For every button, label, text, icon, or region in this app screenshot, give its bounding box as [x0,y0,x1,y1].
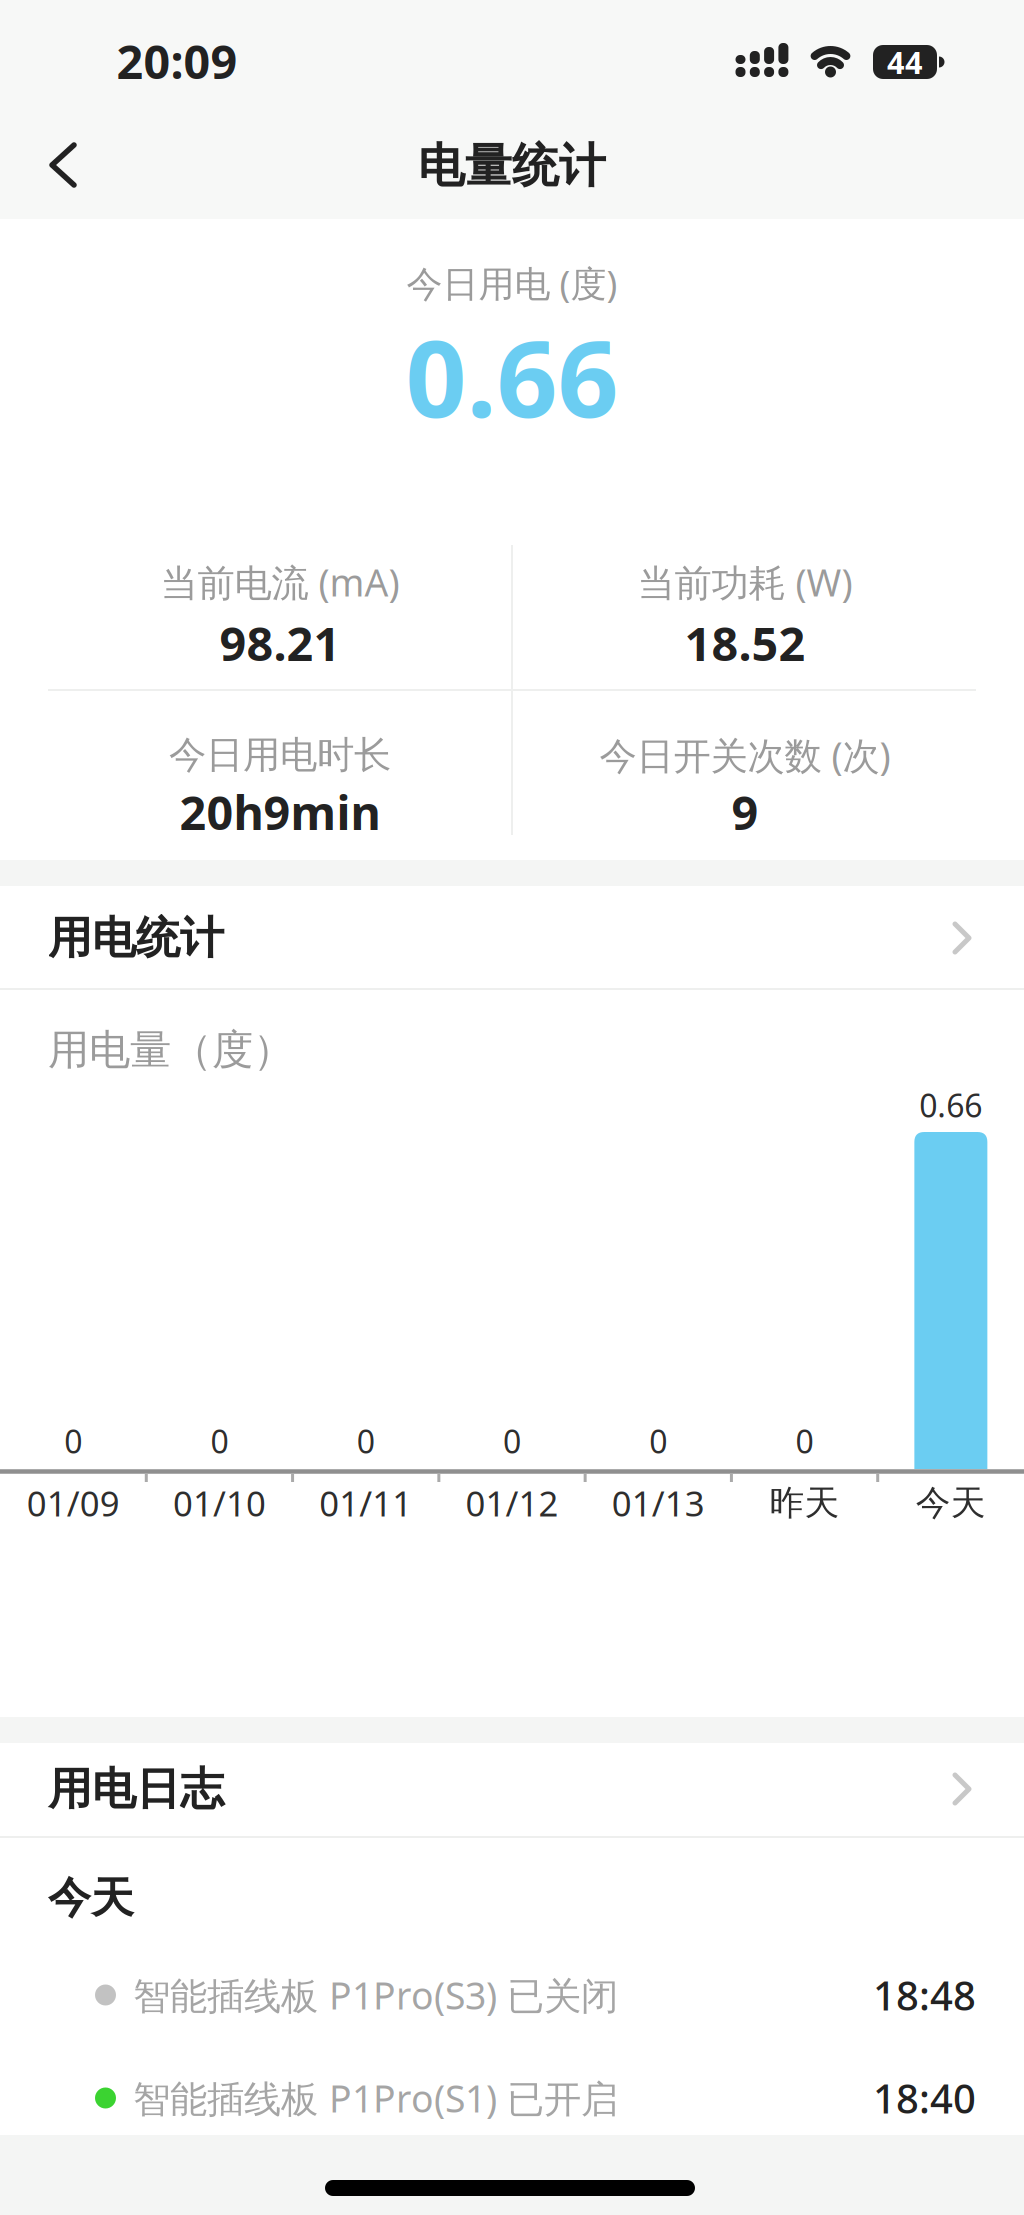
staticText: 20h9min [179,781,380,843]
staticText: 9 [731,781,758,843]
staticText: 昨天 [770,1482,840,1524]
staticText: 0 [649,1420,667,1462]
staticText: 44 [887,42,923,82]
staticText: 0 [210,1420,228,1462]
staticText: 0 [357,1420,375,1462]
staticText: 0 [796,1420,814,1462]
staticText: 用电日志 [48,1762,224,1816]
staticText: 智能插线板 P1Pro(S3) 已关闭 [133,1970,618,2020]
staticText: 0 [64,1420,82,1462]
button[interactable]: 智能插线板 P1Pro(S1) 已开启 [0,2046,1024,2150]
staticText: 电量统计 [418,137,606,195]
staticText: 今日用电 (度) [406,259,617,307]
button[interactable]: 智能插线板 P1Pro(S3) 已关闭 [0,1943,1024,2047]
staticText: 用电量（度） [48,1025,294,1075]
staticText: 智能插线板 P1Pro(S1) 已开启 [133,2073,618,2123]
staticText: 01/12 [465,1480,558,1526]
staticText: 01/11 [319,1480,412,1526]
button[interactable]: Back [28,122,98,208]
button[interactable]: 用电统计 [0,888,1024,988]
staticText: 当前功耗 (W) [637,557,852,607]
staticText: 今日用电时长 [169,732,391,778]
staticText: 用电统计 [48,911,224,965]
button[interactable]: 用电日志 [0,1739,1024,1839]
staticText: 今日开关次数 (次) [599,730,890,780]
staticText: 18:40 [873,2071,976,2124]
staticText: 18.52 [684,612,805,674]
staticText: 01/09 [27,1480,120,1526]
staticText: 0 [503,1420,521,1462]
staticText: 当前电流 (mA) [160,557,399,607]
staticText: 98.21 [219,612,340,674]
staticText: 0.66 [919,1084,982,1126]
staticText: 18:48 [873,1968,976,2021]
staticText: 今天 [48,1872,134,1924]
staticText: 01/13 [612,1480,705,1526]
staticText: 0.66 [405,305,618,447]
staticText: 20:09 [116,30,237,92]
staticText: 01/10 [173,1480,266,1526]
staticText: 今天 [916,1482,986,1524]
